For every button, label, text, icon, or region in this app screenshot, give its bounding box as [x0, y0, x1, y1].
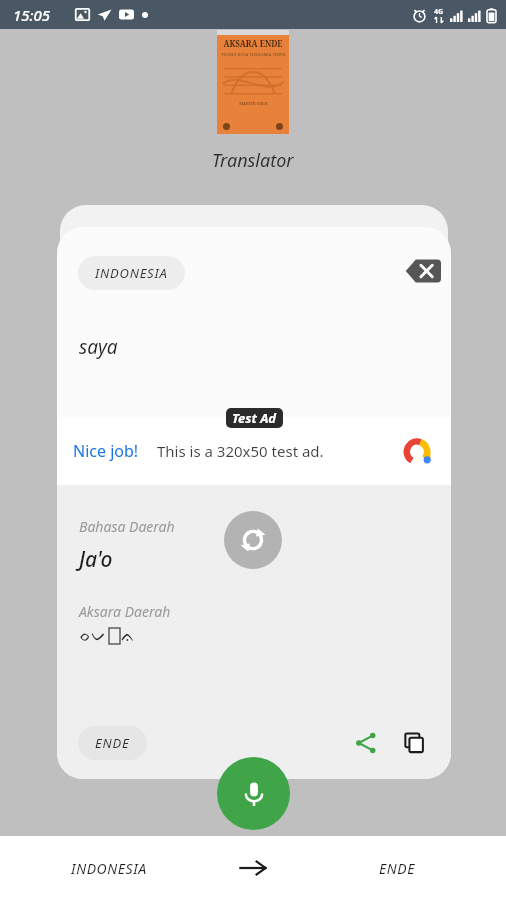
staticText: Aksara Daerah	[79, 602, 171, 621]
button[interactable]: INDONESIA	[78, 256, 185, 290]
staticText: This is a 320x50 test ad.	[157, 441, 324, 461]
staticText: ENDE	[379, 859, 416, 878]
staticText: Ja'o	[79, 545, 113, 574]
staticText: Nice job!	[73, 440, 139, 462]
staticText: ENDE	[95, 734, 130, 752]
button[interactable]: Translate direction	[218, 836, 288, 900]
button[interactable]: Swap languages	[224, 511, 282, 569]
button[interactable]: Aksara Ende app icon	[217, 30, 289, 134]
staticText: ᨔᨆ	[79, 627, 107, 644]
staticText: AKSARA ENDE	[223, 38, 283, 49]
button[interactable]: INDONESIA	[0, 836, 218, 900]
staticText: FLORES NUSA TENGGARA TIMUR	[221, 52, 286, 57]
staticText: 4G	[434, 7, 444, 17]
staticText: Bahasa Daerah	[79, 517, 175, 536]
staticText: Translator	[212, 148, 294, 173]
button[interactable]: ENDE	[78, 726, 147, 760]
staticText: Test Ad	[232, 409, 277, 427]
staticText: INDONESIA	[95, 264, 168, 282]
staticText: ᨊ	[121, 627, 136, 644]
button[interactable]: Clear text	[403, 255, 443, 287]
staticText: INDONESIA	[71, 859, 147, 878]
staticText: MARTIN CHEN	[239, 101, 268, 106]
staticText: 15:05	[13, 5, 51, 25]
button[interactable]: Nice job!	[57, 417, 451, 485]
button[interactable]: Speak	[217, 757, 290, 830]
staticText: saya	[79, 334, 118, 360]
button[interactable]: ENDE	[288, 836, 506, 900]
button[interactable]: Copy	[396, 725, 432, 761]
button[interactable]: Share	[348, 725, 384, 761]
